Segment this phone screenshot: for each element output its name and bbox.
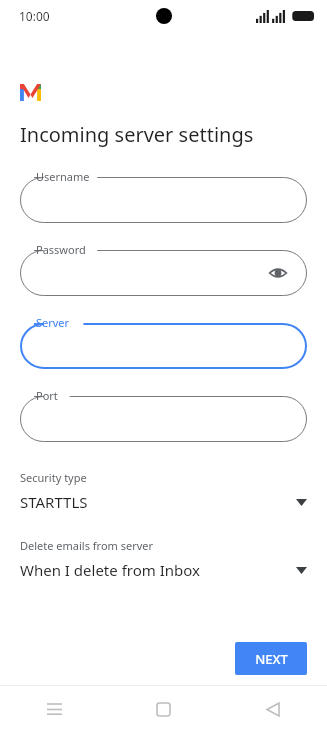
staticText: Port — [36, 388, 58, 403]
staticText: When I delete from Inbox — [20, 560, 296, 580]
staticText: 10:00 — [19, 8, 50, 24]
button[interactable]: Server — [20, 315, 307, 369]
staticText: Incoming server settings — [20, 121, 254, 148]
button[interactable]: Home — [109, 686, 218, 732]
button[interactable]: Username — [20, 169, 307, 223]
staticText: Delete emails from server — [20, 538, 154, 553]
staticText: Server — [36, 315, 70, 330]
staticText: Password — [36, 242, 86, 257]
staticText: Username — [36, 169, 90, 184]
button[interactable]: Port — [20, 388, 307, 442]
staticText: Security type — [20, 470, 87, 485]
button[interactable]: Delete emails from server — [20, 536, 307, 582]
button[interactable]: NEXT — [235, 642, 307, 675]
button[interactable]: Password — [20, 242, 307, 296]
button[interactable]: Recents — [0, 686, 109, 732]
staticText: STARTTLS — [20, 492, 296, 512]
button[interactable]: Show password — [265, 260, 291, 286]
staticText: NEXT — [255, 650, 288, 668]
button[interactable]: Security type — [20, 468, 307, 514]
button[interactable]: Back — [218, 686, 327, 732]
